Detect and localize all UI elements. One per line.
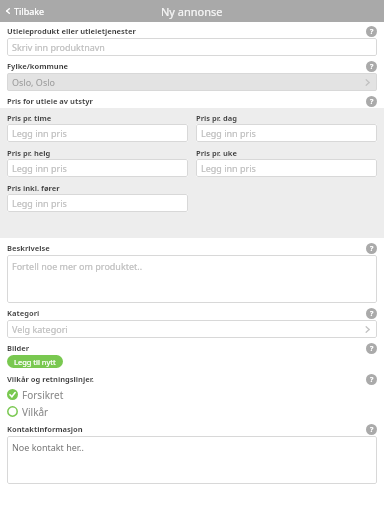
button[interactable]: Vilkår — [7, 403, 377, 420]
staticText: Vilkår — [22, 405, 49, 419]
staticText: Legg inn pris — [201, 162, 256, 174]
button[interactable]: Hjelp — [366, 61, 377, 72]
staticText: Ny annonse — [161, 4, 223, 19]
button[interactable]: Forsikret — [7, 386, 377, 403]
staticText: Legg til nytt — [14, 357, 56, 367]
staticText: Fortell noe mer om produktet.. — [12, 260, 143, 272]
button[interactable]: Skriv inn produktnavn — [7, 38, 377, 56]
button[interactable]: Legg inn pris — [7, 124, 188, 142]
button[interactable]: Legg inn pris — [7, 194, 188, 212]
staticText: Legg inn pris — [12, 127, 67, 139]
staticText: Legg inn pris — [12, 197, 67, 209]
staticText: ? — [370, 244, 374, 254]
button[interactable]: Legg til nytt — [7, 355, 63, 368]
button[interactable]: Hjelp — [366, 96, 377, 107]
staticText: Pris pr. uke — [196, 148, 237, 158]
button[interactable]: Hjelp — [366, 308, 377, 319]
staticText: Fylke/kommune — [7, 61, 69, 71]
staticText: ? — [370, 27, 374, 37]
staticText: ? — [370, 375, 374, 385]
button[interactable]: Legg inn pris — [196, 124, 377, 142]
staticText: Kontaktinformasjon — [7, 424, 83, 434]
staticText: Vilkår og retningslinjer. — [7, 374, 94, 384]
staticText: Legg inn pris — [201, 127, 256, 139]
button[interactable]: Hjelp — [366, 26, 377, 37]
button[interactable]: Hjelp — [366, 424, 377, 435]
button[interactable]: Legg inn pris — [7, 159, 188, 177]
staticText: Legg inn pris — [12, 162, 67, 174]
button[interactable]: Oslo, Oslo — [7, 73, 377, 91]
staticText: ? — [370, 97, 374, 107]
staticText: ? — [370, 62, 374, 72]
button[interactable]: Tilbake — [0, 2, 51, 20]
staticText: Kategori — [7, 308, 40, 318]
staticText: Pris for utleie av utstyr — [7, 96, 93, 106]
staticText: Pris pr. time — [7, 113, 52, 123]
button[interactable]: Hjelp — [366, 243, 377, 254]
staticText: Utleieprodukt eller utleietjenester — [7, 26, 136, 36]
button[interactable]: Velg kategori — [7, 320, 377, 338]
staticText: ? — [370, 425, 374, 435]
staticText: Oslo, Oslo — [12, 76, 55, 88]
staticText: Noe kontakt her.. — [12, 441, 84, 453]
button[interactable]: Hjelp — [366, 343, 377, 354]
staticText: ? — [370, 309, 374, 319]
button[interactable]: Noe kontakt her.. — [7, 436, 377, 484]
staticText: Bilder — [7, 343, 30, 353]
staticText: Skriv inn produktnavn — [12, 41, 105, 53]
button[interactable]: Legg inn pris — [196, 159, 377, 177]
staticText: Velg kategori — [12, 323, 68, 335]
staticText: Beskrivelse — [7, 243, 50, 253]
staticText: Tilbake — [14, 5, 45, 17]
staticText: Pris pr. helg — [7, 148, 51, 158]
staticText: Pris inkl. fører — [7, 183, 60, 193]
staticText: ? — [370, 344, 374, 354]
staticText: Pris pr. dag — [196, 113, 237, 123]
button[interactable]: Fortell noe mer om produktet.. — [7, 255, 377, 303]
staticText: Forsikret — [22, 388, 64, 402]
button[interactable]: Hjelp — [366, 374, 377, 385]
